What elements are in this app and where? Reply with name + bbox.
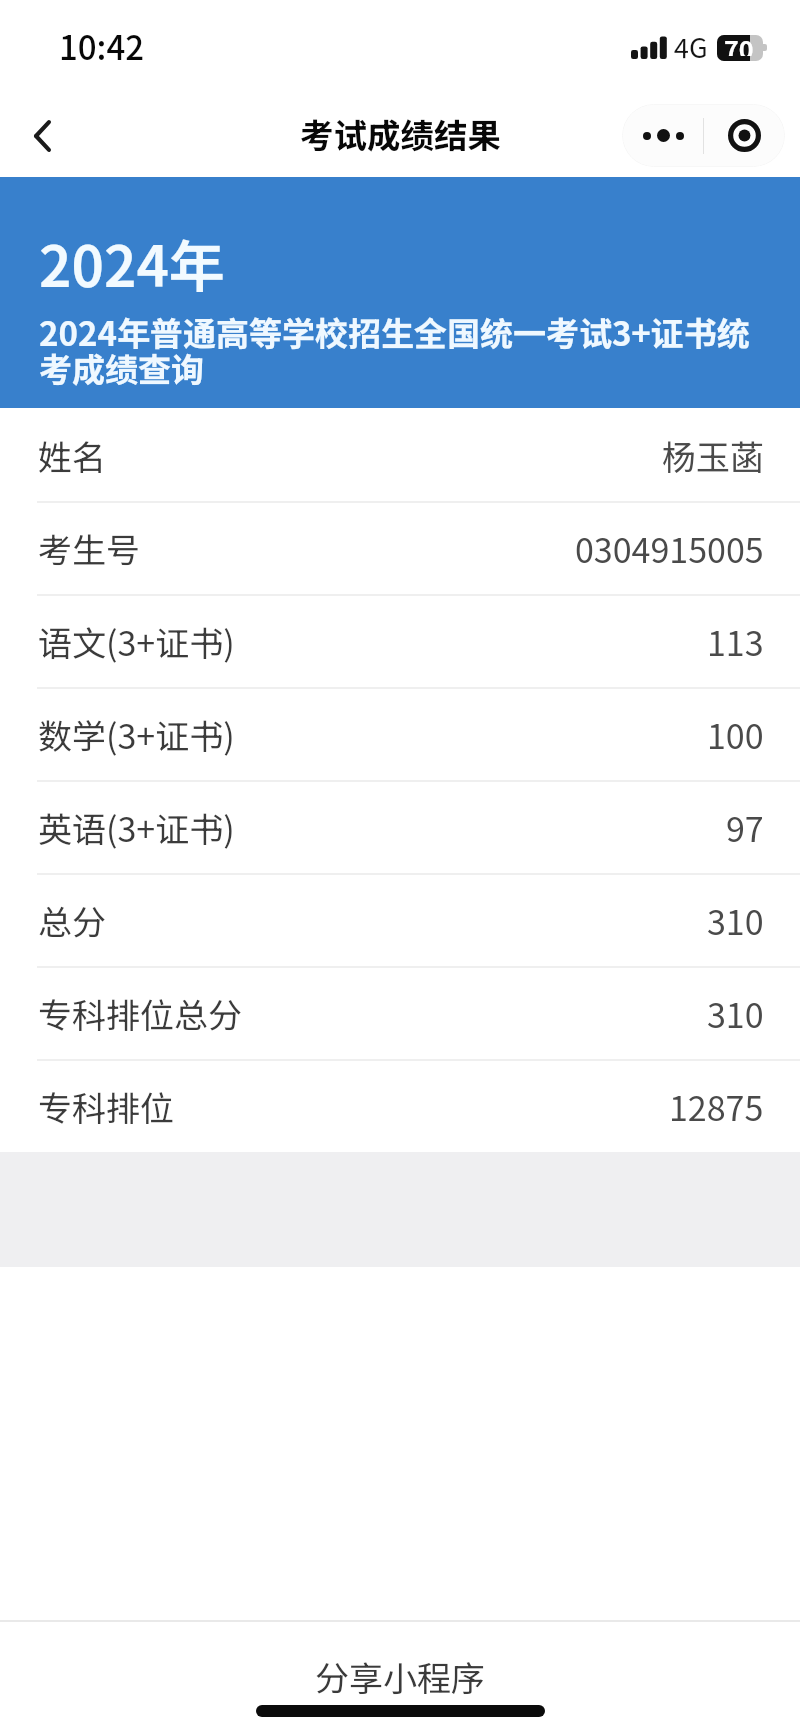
staticText: 语文(3+证书): [38, 617, 235, 666]
button[interactable]: Close mini program: [704, 104, 785, 167]
staticText: 英语(3+证书): [38, 803, 235, 852]
staticText: 总分: [38, 896, 106, 945]
staticText: 分享小程序: [315, 1652, 485, 1701]
button[interactable]: 总分: [0, 875, 800, 966]
staticText: 杨玉菡: [662, 431, 764, 480]
button[interactable]: 专科排位总分: [0, 968, 800, 1059]
staticText: 12875: [669, 1082, 764, 1131]
staticText: 2024年: [39, 222, 225, 303]
button[interactable]: 英语(3+证书): [0, 782, 800, 873]
button[interactable]: 分享小程序: [0, 1622, 800, 1731]
staticText: 310: [707, 896, 764, 945]
staticText: 70: [724, 35, 754, 56]
staticText: 数学(3+证书): [38, 710, 235, 759]
button[interactable]: More options: [622, 104, 704, 167]
staticText: 113: [707, 617, 764, 666]
staticText: 2024年普通高等学校招生全国统一考试3+证书统考成绩查询: [39, 308, 755, 391]
button[interactable]: 考生号: [0, 503, 800, 594]
staticText: 310: [707, 989, 764, 1038]
button[interactable]: Back: [0, 95, 84, 177]
staticText: 4G: [674, 27, 708, 66]
staticText: 10:42: [59, 22, 145, 70]
staticText: 考试成绩结果: [300, 109, 501, 158]
staticText: 姓名: [38, 431, 106, 480]
staticText: 专科排位总分: [38, 989, 242, 1038]
staticText: 专科排位: [38, 1082, 174, 1131]
button[interactable]: 专科排位: [0, 1061, 800, 1152]
staticText: 0304915005: [575, 524, 764, 573]
button[interactable]: 语文(3+证书): [0, 596, 800, 687]
staticText: 考生号: [38, 524, 140, 573]
button[interactable]: 数学(3+证书): [0, 689, 800, 780]
button[interactable]: 姓名: [0, 410, 800, 501]
staticText: 100: [707, 710, 764, 759]
staticText: 97: [726, 803, 764, 852]
